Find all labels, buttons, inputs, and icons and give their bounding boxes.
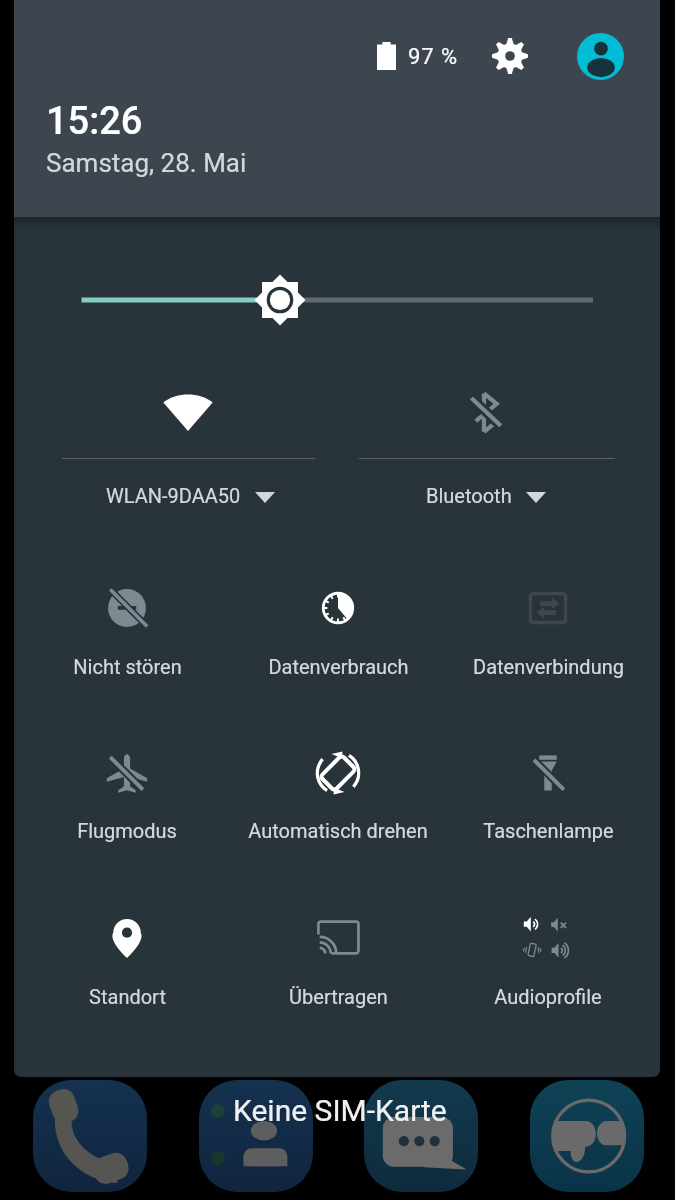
staticText: Bluetooth [426,484,512,507]
button[interactable]: Datenverbrauch [238,578,438,678]
button[interactable]: Standort [27,908,227,1008]
staticText: Samstag, 28. Mai [46,148,247,178]
staticText: 97 % [408,44,458,70]
button[interactable]: Audioprofile [448,908,648,1008]
staticText: Übertragen [289,985,388,1008]
button[interactable]: Contacts [199,1080,313,1192]
button[interactable]: User account [567,23,633,89]
staticText: Datenverbindung [473,655,624,678]
staticText: Keine SIM-Karte [233,1093,447,1128]
button[interactable]: Nicht stören [27,578,227,678]
staticText: Flugmodus [77,819,177,842]
staticText: Automatisch drehen [248,819,428,842]
button[interactable]: Bluetooth [335,370,639,518]
staticText: 15:26 [46,99,143,144]
staticText: Taschenlampe [483,819,614,842]
button[interactable]: Settings [477,23,543,89]
button[interactable]: Taschenlampe [448,743,648,842]
button[interactable]: Phone [33,1080,147,1192]
button[interactable]: Datenverbindung [448,578,648,678]
button[interactable]: Flugmodus [27,743,227,842]
button[interactable]: WLAN-9DAA50 [38,370,339,518]
button[interactable]: Übertragen [238,908,438,1008]
staticText: Nicht stören [73,655,182,678]
button[interactable]: Brightness [60,270,615,330]
button[interactable]: Automatisch drehen [238,743,438,842]
button[interactable]: Browser [530,1080,644,1192]
staticText: WLAN-9DAA50 [106,484,241,507]
staticText: Datenverbrauch [268,655,409,678]
staticText: Standort [89,985,166,1008]
button[interactable]: Messages [364,1080,478,1192]
staticText: Audioprofile [494,985,602,1008]
